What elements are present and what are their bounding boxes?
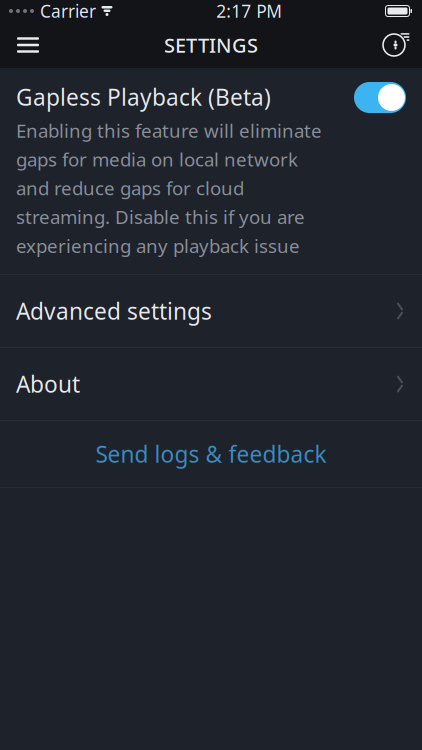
button[interactable]: Menu — [6, 23, 50, 67]
staticText: About — [16, 369, 80, 399]
staticText: Gapless Playback (Beta) — [16, 82, 271, 112]
button[interactable]: Send logs & feedback — [0, 421, 422, 487]
staticText: 2:17 PM — [216, 0, 282, 22]
staticText: Send logs & feedback — [95, 439, 326, 469]
staticText: Advanced settings — [16, 296, 212, 326]
button[interactable]: Gapless Playback — [354, 82, 406, 113]
button[interactable]: About — [0, 348, 422, 420]
button[interactable]: Advanced settings — [0, 275, 422, 347]
staticText: Carrier — [40, 0, 96, 22]
staticText: SETTINGS — [164, 32, 258, 58]
button[interactable]: Cast — [372, 23, 416, 67]
staticText: Enabling this feature will eliminate gap… — [16, 118, 322, 258]
